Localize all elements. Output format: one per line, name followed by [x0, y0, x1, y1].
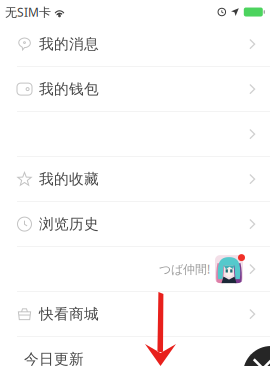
- staticText: 我的收藏: [39, 170, 99, 188]
- button[interactable]: 我的收藏: [0, 157, 270, 202]
- button[interactable]: Collapse: [243, 346, 270, 366]
- button[interactable]: 今日更新: [0, 337, 270, 366]
- staticText: 我的钱包: [39, 80, 99, 98]
- staticText: 今日更新: [24, 350, 84, 366]
- button[interactable]: [0, 247, 270, 292]
- button[interactable]: 浏览历史: [0, 202, 270, 247]
- button[interactable]: 快看商城: [0, 292, 270, 337]
- button[interactable]: 我的钱包: [0, 67, 270, 112]
- staticText: 无SIM卡: [5, 4, 51, 20]
- staticText: 快看商城: [39, 305, 99, 323]
- staticText: つば仲間!: [159, 261, 210, 277]
- staticText: 浏览历史: [39, 215, 99, 233]
- staticText: 我的消息: [39, 35, 99, 53]
- button[interactable]: 我的消息: [0, 22, 270, 67]
